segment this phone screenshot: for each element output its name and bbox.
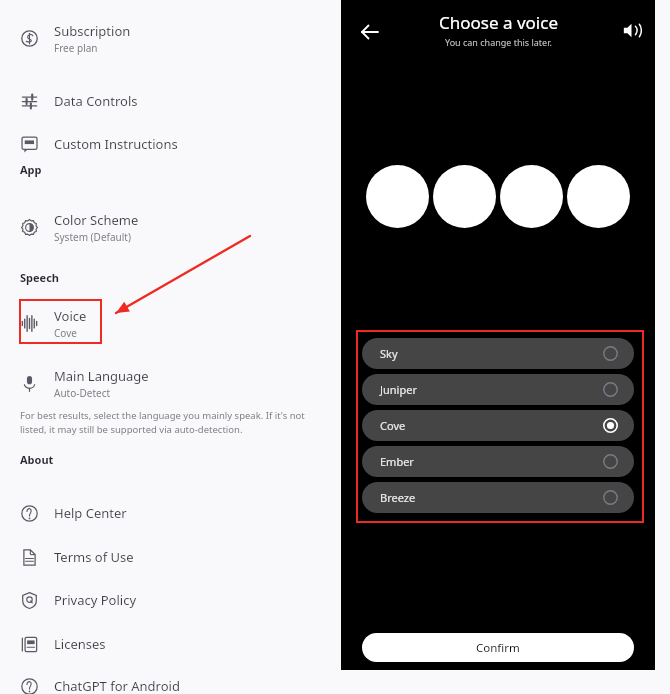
staticText: Data Controls bbox=[54, 92, 138, 110]
button[interactable]: Licenses bbox=[0, 627, 340, 661]
button[interactable]: Confirm bbox=[362, 633, 634, 662]
staticText: Cove bbox=[380, 418, 406, 433]
staticText: Custom Instructions bbox=[54, 135, 178, 153]
button[interactable]: Color Scheme bbox=[0, 207, 340, 247]
staticText: Main Language bbox=[54, 367, 149, 385]
staticText: You can change this later. bbox=[445, 36, 552, 48]
staticText: Help Center bbox=[54, 504, 127, 522]
staticText: Voice bbox=[54, 307, 87, 325]
button[interactable]: Main Language bbox=[0, 363, 340, 403]
staticText: Terms of Use bbox=[54, 548, 134, 566]
button[interactable]: ChatGPT for Android bbox=[0, 669, 340, 694]
staticText: Breeze bbox=[380, 490, 416, 505]
staticText: Cove bbox=[54, 326, 77, 340]
staticText: ChatGPT for Android bbox=[54, 677, 180, 694]
button[interactable]: Back bbox=[351, 14, 387, 50]
staticText: Free plan bbox=[54, 41, 98, 55]
button[interactable]: Help Center bbox=[0, 496, 340, 530]
staticText: About bbox=[20, 452, 54, 467]
staticText: Privacy Policy bbox=[54, 591, 137, 609]
staticText: Confirm bbox=[476, 640, 520, 656]
button[interactable]: Breeze bbox=[362, 482, 634, 513]
button[interactable]: Subscription bbox=[0, 18, 340, 58]
button[interactable]: Sound bbox=[613, 12, 649, 48]
button[interactable]: Terms of Use bbox=[0, 540, 340, 574]
staticText: Licenses bbox=[54, 635, 106, 653]
button[interactable]: Juniper bbox=[362, 374, 634, 405]
button[interactable]: Privacy Policy bbox=[0, 583, 340, 617]
staticText: Color Scheme bbox=[54, 211, 139, 229]
button[interactable]: Voice bbox=[0, 303, 340, 343]
staticText: For best results, select the language yo… bbox=[20, 409, 320, 436]
button[interactable]: Sky bbox=[362, 338, 634, 369]
staticText: Ember bbox=[380, 454, 414, 469]
button[interactable]: Data Controls bbox=[0, 84, 340, 118]
staticText: Juniper bbox=[380, 382, 417, 397]
staticText: Choose a voice bbox=[439, 11, 558, 34]
button[interactable]: Custom Instructions bbox=[0, 127, 340, 161]
staticText: Auto-Detect bbox=[54, 386, 111, 400]
button[interactable]: Cove bbox=[362, 410, 634, 441]
staticText: System (Default) bbox=[54, 230, 131, 244]
staticText: Subscription bbox=[54, 22, 131, 40]
staticText: Sky bbox=[380, 346, 398, 361]
staticText: Speech bbox=[20, 270, 59, 285]
staticText: App bbox=[20, 162, 42, 177]
button[interactable]: Ember bbox=[362, 446, 634, 477]
